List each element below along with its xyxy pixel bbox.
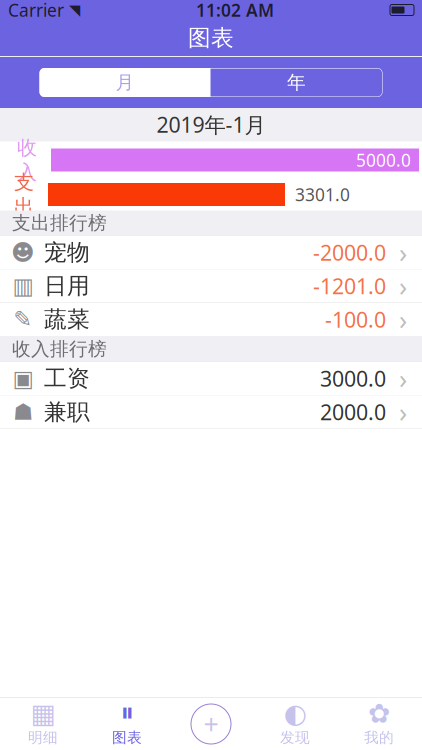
staticText: ▦ [30, 698, 55, 729]
staticText: 宠物 [44, 239, 90, 266]
button[interactable]: ✎ [0, 303, 422, 336]
staticText: 图表 [188, 24, 234, 52]
button[interactable]: ▣ [0, 362, 422, 395]
staticText: + [203, 706, 218, 742]
button[interactable]: ▥ [0, 269, 422, 303]
staticText: 蔬菜 [44, 306, 90, 333]
button[interactable]: ☗ [0, 395, 422, 429]
staticText: ▣ [12, 366, 33, 391]
staticText: 11:02 AM [196, 0, 274, 21]
staticText: ☻ [11, 240, 35, 265]
staticText: 收入排行榜 [12, 337, 107, 360]
staticText: 日用 [44, 272, 90, 300]
staticText: 3000.0 [320, 364, 386, 393]
button[interactable]: ◐ [253, 698, 337, 750]
staticText: › [399, 394, 407, 430]
staticText: ◐ [283, 698, 306, 729]
staticText: -2000.0 [313, 238, 386, 267]
staticText: 3301.0 [295, 183, 350, 206]
staticText: › [399, 268, 407, 304]
staticText: ☗ [13, 399, 33, 425]
staticText: 支出 [14, 170, 34, 219]
staticText: -100.0 [325, 305, 386, 334]
staticText: 2019年-1月 [156, 110, 265, 139]
button[interactable]: Add [169, 698, 253, 750]
button[interactable]: ⏸ [85, 698, 169, 750]
button[interactable]: ▦ [1, 698, 85, 750]
staticText: 工资 [44, 365, 90, 392]
staticText: 月 [115, 71, 134, 94]
button[interactable]: ☻ [0, 236, 422, 269]
staticText: 年 [287, 71, 306, 94]
staticText: -1201.0 [313, 272, 386, 300]
staticText: ▥ [12, 273, 33, 299]
staticText: 支出排行榜 [12, 211, 107, 234]
button[interactable]: 年 [210, 68, 382, 97]
staticText: › [399, 235, 407, 270]
staticText: › [399, 302, 407, 337]
staticText: 图表 [112, 728, 142, 746]
staticText: › [399, 361, 407, 396]
staticText: 兼职 [44, 398, 90, 426]
staticText: 2000.0 [320, 398, 386, 426]
staticText: 明细 [28, 728, 58, 746]
staticText: 收入 [17, 135, 37, 184]
button[interactable]: ✿ [337, 698, 421, 750]
button[interactable]: 月 [39, 68, 210, 97]
staticText: ◥ [69, 2, 80, 18]
staticText: ⏸ [120, 700, 133, 726]
staticText: 5000.0 [356, 148, 411, 171]
staticText: ✎ [13, 307, 32, 332]
staticText: Carrier [8, 0, 64, 21]
staticText: 我的 [364, 728, 394, 746]
staticText: 发现 [280, 728, 310, 746]
staticText: ✿ [368, 698, 390, 729]
